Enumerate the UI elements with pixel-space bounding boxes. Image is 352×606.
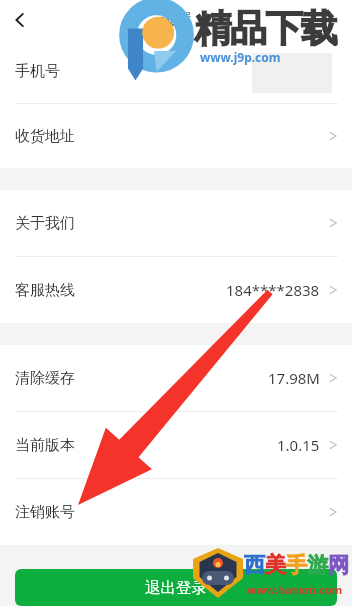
button[interactable]: 客服热线 bbox=[0, 257, 352, 323]
staticText: 清除缓存 bbox=[15, 369, 75, 388]
button[interactable]: 手机号 bbox=[0, 40, 352, 103]
staticText: 设置 bbox=[160, 10, 192, 30]
button[interactable]: Back bbox=[0, 0, 40, 40]
staticText: 退出登录 bbox=[145, 578, 207, 598]
button[interactable]: 当前版本 bbox=[0, 412, 352, 478]
button[interactable]: 退出登录 bbox=[15, 569, 337, 606]
staticText: 关于我们 bbox=[15, 214, 75, 233]
button[interactable]: 收货地址 bbox=[0, 104, 352, 168]
staticText: www.j9p.com bbox=[200, 49, 281, 65]
staticText: 当前版本 bbox=[15, 436, 75, 455]
staticText: 客服热线 bbox=[15, 281, 75, 300]
staticText: 184****2838 bbox=[226, 280, 320, 300]
staticText: www.hanxm.com bbox=[247, 582, 343, 597]
staticText: 游 bbox=[307, 552, 328, 578]
staticText: 精品下载 bbox=[195, 5, 337, 52]
staticText: 手 bbox=[286, 552, 307, 578]
staticText: 网 bbox=[328, 552, 349, 578]
staticText: 收货地址 bbox=[15, 127, 75, 146]
staticText: 西 bbox=[244, 552, 265, 578]
staticText: 注销账号 bbox=[15, 503, 75, 522]
button[interactable]: 清除缓存 bbox=[0, 345, 352, 411]
button[interactable]: 注销账号 bbox=[0, 479, 352, 545]
button[interactable]: 关于我们 bbox=[0, 190, 352, 256]
staticText: 1.0.15 bbox=[277, 435, 320, 455]
staticText: 手机号 bbox=[15, 62, 60, 81]
staticText: 美 bbox=[265, 552, 286, 578]
staticText: 17.98M bbox=[268, 368, 320, 388]
